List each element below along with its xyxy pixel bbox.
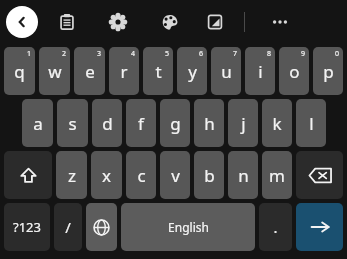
staticText: q	[14, 60, 25, 83]
button[interactable]: t	[143, 47, 173, 95]
staticText: n	[238, 164, 249, 187]
button[interactable]: Clipboard	[53, 8, 81, 36]
button[interactable]: Theme	[155, 8, 183, 36]
staticText: 3	[97, 49, 102, 59]
button[interactable]: y	[177, 47, 207, 95]
staticText: 9	[301, 49, 306, 59]
staticText: 4	[131, 49, 136, 59]
button[interactable]: z	[56, 151, 87, 199]
staticText: a	[33, 112, 43, 135]
staticText: l	[309, 112, 314, 135]
button[interactable]: w	[39, 47, 70, 95]
button[interactable]: q	[4, 47, 35, 95]
button[interactable]: i	[245, 47, 275, 95]
staticText: i	[258, 60, 263, 83]
button[interactable]: a	[22, 99, 53, 147]
button[interactable]: Settings	[104, 8, 132, 36]
staticText: b	[204, 164, 215, 187]
button[interactable]: c	[126, 151, 156, 199]
button[interactable]: ?123	[4, 203, 50, 251]
staticText: p	[323, 60, 334, 83]
staticText: m	[269, 164, 285, 187]
staticText: w	[48, 60, 62, 83]
staticText: j	[241, 112, 246, 135]
staticText: 0	[335, 49, 340, 59]
button[interactable]: u	[211, 47, 241, 95]
staticText: g	[170, 112, 181, 135]
button[interactable]: Resize keyboard	[201, 8, 229, 36]
staticText: r	[120, 60, 128, 83]
button[interactable]: Backspace	[296, 151, 343, 199]
button[interactable]: m	[262, 151, 292, 199]
staticText: ?123	[13, 218, 41, 236]
staticText: x	[102, 164, 111, 187]
button[interactable]: /	[54, 203, 82, 251]
staticText: 2	[62, 49, 67, 59]
staticText: e	[85, 60, 95, 83]
button[interactable]: e	[74, 47, 105, 95]
staticText: f	[138, 112, 144, 135]
button[interactable]: o	[279, 47, 309, 95]
staticText: 5	[165, 49, 170, 59]
button[interactable]: l	[296, 99, 326, 147]
staticText: 6	[199, 49, 204, 59]
staticText: English	[168, 219, 209, 235]
staticText: u	[221, 60, 232, 83]
button[interactable]: g	[160, 99, 190, 147]
staticText: z	[68, 164, 76, 187]
staticText: v	[171, 164, 180, 187]
button[interactable]: Back	[6, 6, 38, 38]
staticText: c	[137, 164, 146, 187]
staticText: .	[273, 217, 278, 237]
staticText: /	[65, 217, 71, 237]
staticText: o	[289, 60, 300, 83]
staticText: k	[272, 112, 282, 135]
button[interactable]: More options	[266, 8, 294, 36]
button[interactable]: p	[313, 47, 343, 95]
staticText: y	[188, 60, 197, 83]
button[interactable]: v	[160, 151, 190, 199]
button[interactable]: Enter	[296, 203, 343, 251]
button[interactable]: Change language	[86, 203, 117, 251]
button[interactable]: n	[228, 151, 258, 199]
staticText: 1	[27, 49, 32, 59]
button[interactable]: s	[57, 99, 88, 147]
staticText: 7	[233, 49, 238, 59]
staticText: d	[102, 112, 113, 135]
button[interactable]: x	[91, 151, 122, 199]
staticText: h	[204, 112, 215, 135]
button[interactable]: k	[262, 99, 292, 147]
button[interactable]: f	[126, 99, 156, 147]
button[interactable]: h	[194, 99, 224, 147]
button[interactable]: j	[228, 99, 258, 147]
button[interactable]: r	[109, 47, 139, 95]
button[interactable]: .	[259, 203, 292, 251]
staticText: s	[68, 112, 77, 135]
button[interactable]: English	[121, 203, 255, 251]
button[interactable]: Shift	[4, 151, 52, 199]
staticText: 8	[267, 49, 272, 59]
staticText: t	[155, 60, 162, 83]
button[interactable]: d	[92, 99, 122, 147]
button[interactable]: b	[194, 151, 224, 199]
